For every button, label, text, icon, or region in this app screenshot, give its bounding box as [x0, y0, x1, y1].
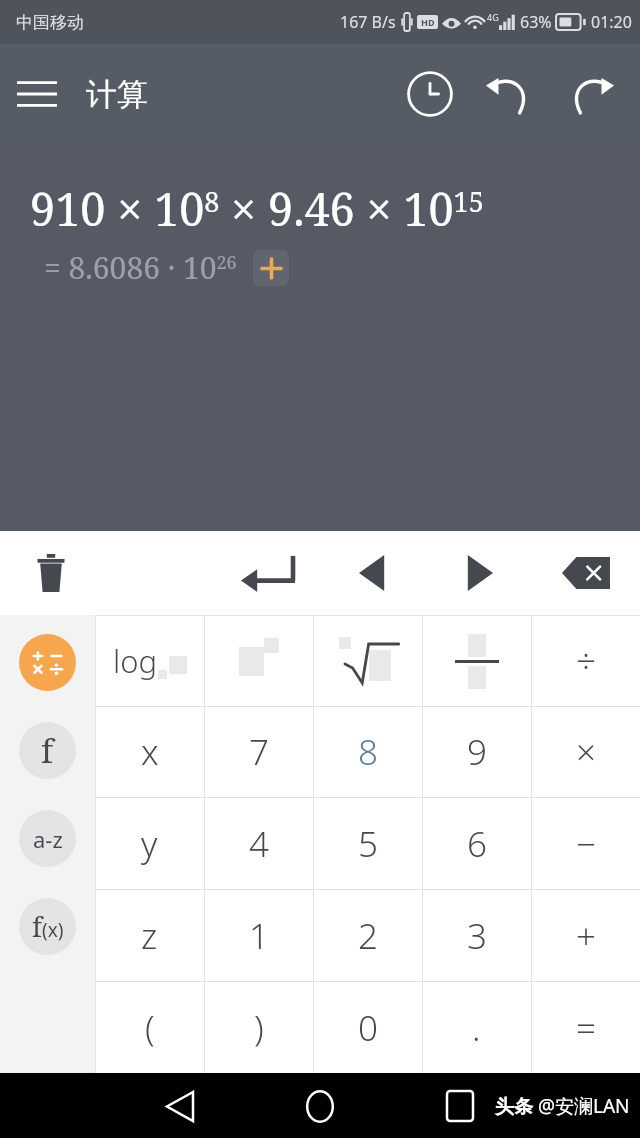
staticText: 7: [249, 728, 269, 776]
button[interactable]: 0: [313, 982, 422, 1073]
staticText: .: [472, 1004, 481, 1052]
staticText: x: [141, 728, 159, 776]
button[interactable]: Add to history: [253, 250, 289, 286]
staticText: y: [141, 820, 158, 868]
staticText: 3: [467, 912, 487, 960]
button[interactable]: ): [204, 982, 313, 1073]
button[interactable]: 8: [313, 707, 422, 797]
staticText: 0: [358, 1004, 378, 1052]
button[interactable]: History: [390, 44, 470, 144]
button[interactable]: Letters: [19, 810, 76, 867]
button[interactable]: [422, 616, 531, 706]
button[interactable]: Undo: [470, 44, 550, 144]
staticText: 计算: [86, 75, 148, 114]
button[interactable]: Functions: [19, 722, 76, 779]
staticText: log: [113, 640, 158, 682]
button[interactable]: log: [95, 616, 204, 706]
button[interactable]: −: [531, 798, 640, 889]
staticText: 4G: [487, 11, 499, 23]
staticText: 头条 @安澜LAN: [495, 1093, 630, 1119]
staticText: 01:20: [591, 11, 632, 33]
button[interactable]: 3: [422, 890, 531, 981]
staticText: 167 B/s: [340, 11, 396, 33]
staticText: ÷: [576, 637, 596, 685]
staticText: 1: [249, 912, 269, 960]
button[interactable]: Home: [289, 1075, 351, 1137]
staticText: −: [576, 820, 596, 868]
button[interactable]: Back: [149, 1075, 211, 1137]
button[interactable]: z: [95, 890, 204, 981]
staticText: (: [145, 1004, 155, 1052]
staticText: HD: [421, 16, 435, 28]
button[interactable]: Enter: [216, 531, 320, 615]
button[interactable]: [204, 616, 313, 706]
staticText: 6: [467, 820, 487, 868]
staticText: f: [41, 728, 54, 773]
button[interactable]: [313, 616, 422, 706]
button[interactable]: ×: [531, 707, 640, 797]
staticText: 4: [249, 820, 269, 868]
button[interactable]: +: [531, 890, 640, 981]
staticText: 8: [358, 728, 378, 776]
button[interactable]: Redo: [550, 44, 630, 144]
button[interactable]: 5: [313, 798, 422, 889]
staticText: ×: [576, 728, 596, 776]
button[interactable]: Move left: [320, 531, 426, 615]
button[interactable]: ÷: [531, 616, 640, 706]
button[interactable]: 7: [204, 707, 313, 797]
staticText: a-z: [33, 824, 63, 854]
button[interactable]: .: [422, 982, 531, 1073]
button[interactable]: Move right: [426, 531, 532, 615]
button[interactable]: 6: [422, 798, 531, 889]
staticText: +: [576, 912, 596, 960]
button[interactable]: x: [95, 707, 204, 797]
staticText: ): [254, 1004, 264, 1052]
button[interactable]: Recent apps: [429, 1075, 491, 1137]
button[interactable]: Operators: [19, 634, 76, 691]
staticText: 中国移动: [16, 12, 84, 33]
button[interactable]: Clear: [18, 540, 84, 606]
staticText: f(x): [32, 908, 64, 945]
staticText: = 8.6086 · 1026: [44, 247, 237, 288]
staticText: 63%: [520, 11, 552, 33]
staticText: 5: [358, 820, 378, 868]
button[interactable]: 1: [204, 890, 313, 981]
button[interactable]: y: [95, 798, 204, 889]
staticText: =: [576, 1004, 596, 1052]
button[interactable]: 2: [313, 890, 422, 981]
button[interactable]: =: [531, 982, 640, 1073]
staticText: 910 × 108 × 9.46 × 1015: [30, 178, 484, 239]
staticText: 9: [467, 728, 487, 776]
button[interactable]: 4: [204, 798, 313, 889]
button[interactable]: 9: [422, 707, 531, 797]
staticText: 2: [358, 912, 378, 960]
button[interactable]: Custom functions: [19, 898, 76, 955]
staticText: z: [141, 912, 158, 960]
button[interactable]: Backspace: [532, 531, 640, 615]
button[interactable]: (: [95, 982, 204, 1073]
button[interactable]: Menu: [0, 44, 74, 144]
